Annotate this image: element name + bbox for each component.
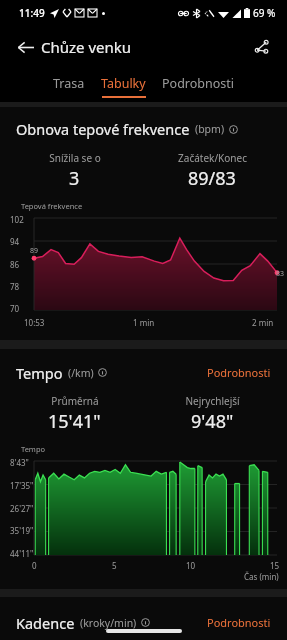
staticText: 2 min bbox=[252, 317, 274, 328]
staticText: 17'35" bbox=[10, 480, 34, 491]
staticText: Začátek/Konec bbox=[178, 151, 247, 165]
staticText: Podrobnosti bbox=[207, 615, 271, 630]
staticText: (bpm) bbox=[195, 122, 225, 136]
button[interactable]: Podrobnosti bbox=[154, 72, 242, 95]
staticText: 26'27" bbox=[10, 503, 34, 514]
staticText: Snížila se o bbox=[49, 151, 101, 165]
staticText: (/km) bbox=[68, 366, 94, 380]
staticText: 15 bbox=[270, 560, 280, 571]
staticText: Chůze venku bbox=[41, 37, 132, 57]
staticText: Podrobnosti bbox=[207, 365, 271, 380]
staticText: 44'11" bbox=[10, 548, 34, 559]
staticText: Nejrychlejší bbox=[185, 394, 240, 408]
staticText: 11:49 bbox=[19, 6, 45, 20]
staticText: Kadence bbox=[16, 613, 75, 633]
staticText: 89 bbox=[30, 246, 39, 256]
staticText: Tepová frekvence bbox=[21, 201, 83, 211]
button[interactable]: Share bbox=[246, 31, 278, 63]
staticText: 86 bbox=[10, 259, 20, 270]
staticText: 94 bbox=[10, 236, 20, 247]
staticText: 3 bbox=[69, 166, 80, 191]
staticText: Tabulky bbox=[101, 75, 146, 92]
staticText: Podrobnosti bbox=[162, 75, 234, 92]
staticText: 0 bbox=[32, 560, 37, 571]
staticText: 35'19" bbox=[10, 525, 34, 536]
staticText: 70 bbox=[10, 303, 20, 314]
staticText: 10:53 bbox=[24, 317, 45, 328]
staticText: 69 % bbox=[253, 6, 276, 20]
staticText: 9'48" bbox=[191, 409, 234, 434]
button[interactable]: Tabulky bbox=[93, 72, 154, 98]
staticText: 78 bbox=[10, 281, 20, 292]
staticText: 8'43" bbox=[10, 457, 29, 468]
staticText: 5 bbox=[112, 560, 117, 571]
staticText: 1 min bbox=[133, 317, 155, 328]
button[interactable]: Podrobnosti bbox=[203, 361, 275, 384]
staticText: Průměrná bbox=[51, 394, 99, 408]
staticText: Trasa bbox=[53, 75, 85, 92]
staticText: Čas (min) bbox=[244, 571, 279, 582]
staticText: 10 bbox=[186, 560, 196, 571]
staticText: 102 bbox=[10, 214, 24, 225]
staticText: Tempo bbox=[16, 363, 63, 383]
button[interactable]: Podrobnosti bbox=[203, 611, 275, 634]
button[interactable]: Trasa bbox=[45, 72, 93, 95]
staticText: 83 bbox=[276, 269, 285, 279]
staticText: (kroky/min) bbox=[80, 616, 137, 630]
staticText: Tempo bbox=[21, 444, 46, 454]
button[interactable]: Back bbox=[9, 31, 41, 63]
staticText: 15'41" bbox=[48, 409, 101, 434]
staticText: Obnova tepové frekvence bbox=[16, 119, 190, 139]
staticText: 89/83 bbox=[188, 166, 236, 191]
